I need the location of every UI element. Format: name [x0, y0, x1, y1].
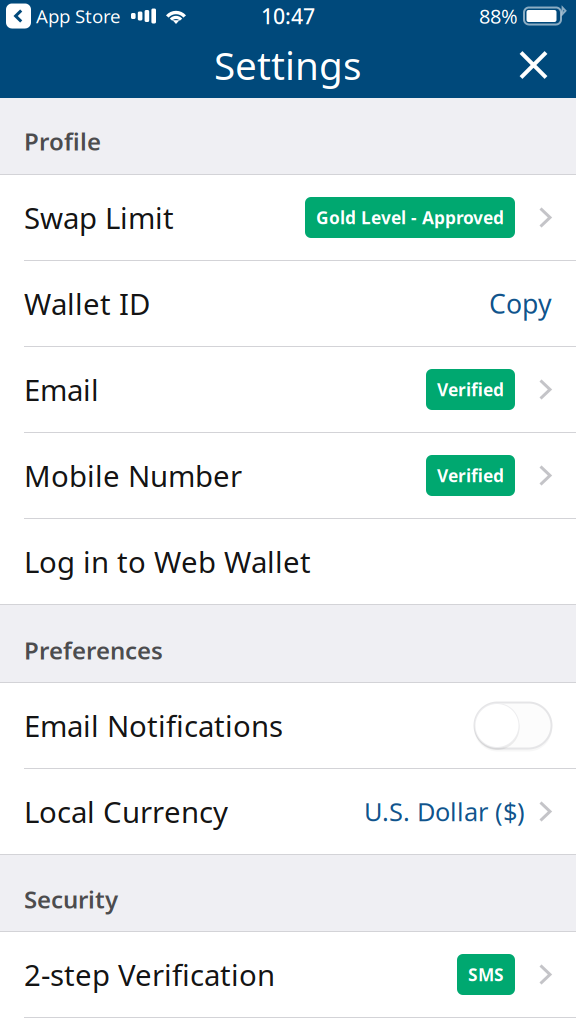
staticText: Preferences [24, 634, 163, 666]
button[interactable]: 2-step Verification [0, 932, 576, 1017]
staticText: Verified [437, 378, 504, 401]
button[interactable]: Log in to Web Wallet [0, 519, 576, 604]
button[interactable]: Local Currency [0, 769, 576, 854]
staticText: 2-step Verification [24, 955, 275, 994]
button[interactable]: Email Notifications [474, 699, 552, 751]
staticText: Email [24, 370, 99, 409]
button[interactable]: Copy [489, 276, 552, 331]
staticText: Swap Limit [24, 198, 174, 237]
button[interactable]: Email Notifications [0, 683, 576, 768]
button[interactable]: App Store [6, 3, 121, 28]
staticText: Email Notifications [24, 706, 283, 745]
staticText: Gold Level - Approved [316, 206, 504, 229]
button[interactable]: Swap Limit [0, 175, 576, 260]
button[interactable]: Close [505, 36, 562, 93]
staticText: SMS [468, 963, 504, 986]
button[interactable]: Mobile Number [0, 433, 576, 518]
staticText: Local Currency [24, 792, 228, 831]
staticText: Verified [437, 464, 504, 487]
staticText: Settings [214, 39, 362, 91]
staticText: U.S. Dollar ($) [364, 795, 525, 828]
staticText: Profile [24, 125, 101, 157]
staticText: Security [24, 883, 118, 915]
button[interactable]: Wallet ID [0, 261, 576, 346]
staticText: Wallet ID [24, 284, 150, 323]
button[interactable]: Email [0, 347, 576, 432]
staticText: Mobile Number [24, 456, 242, 495]
staticText: App Store [36, 4, 121, 28]
staticText: Copy [489, 286, 552, 321]
staticText: 88% [479, 3, 518, 29]
staticText: 10:47 [261, 2, 315, 30]
staticText: Log in to Web Wallet [24, 542, 311, 581]
